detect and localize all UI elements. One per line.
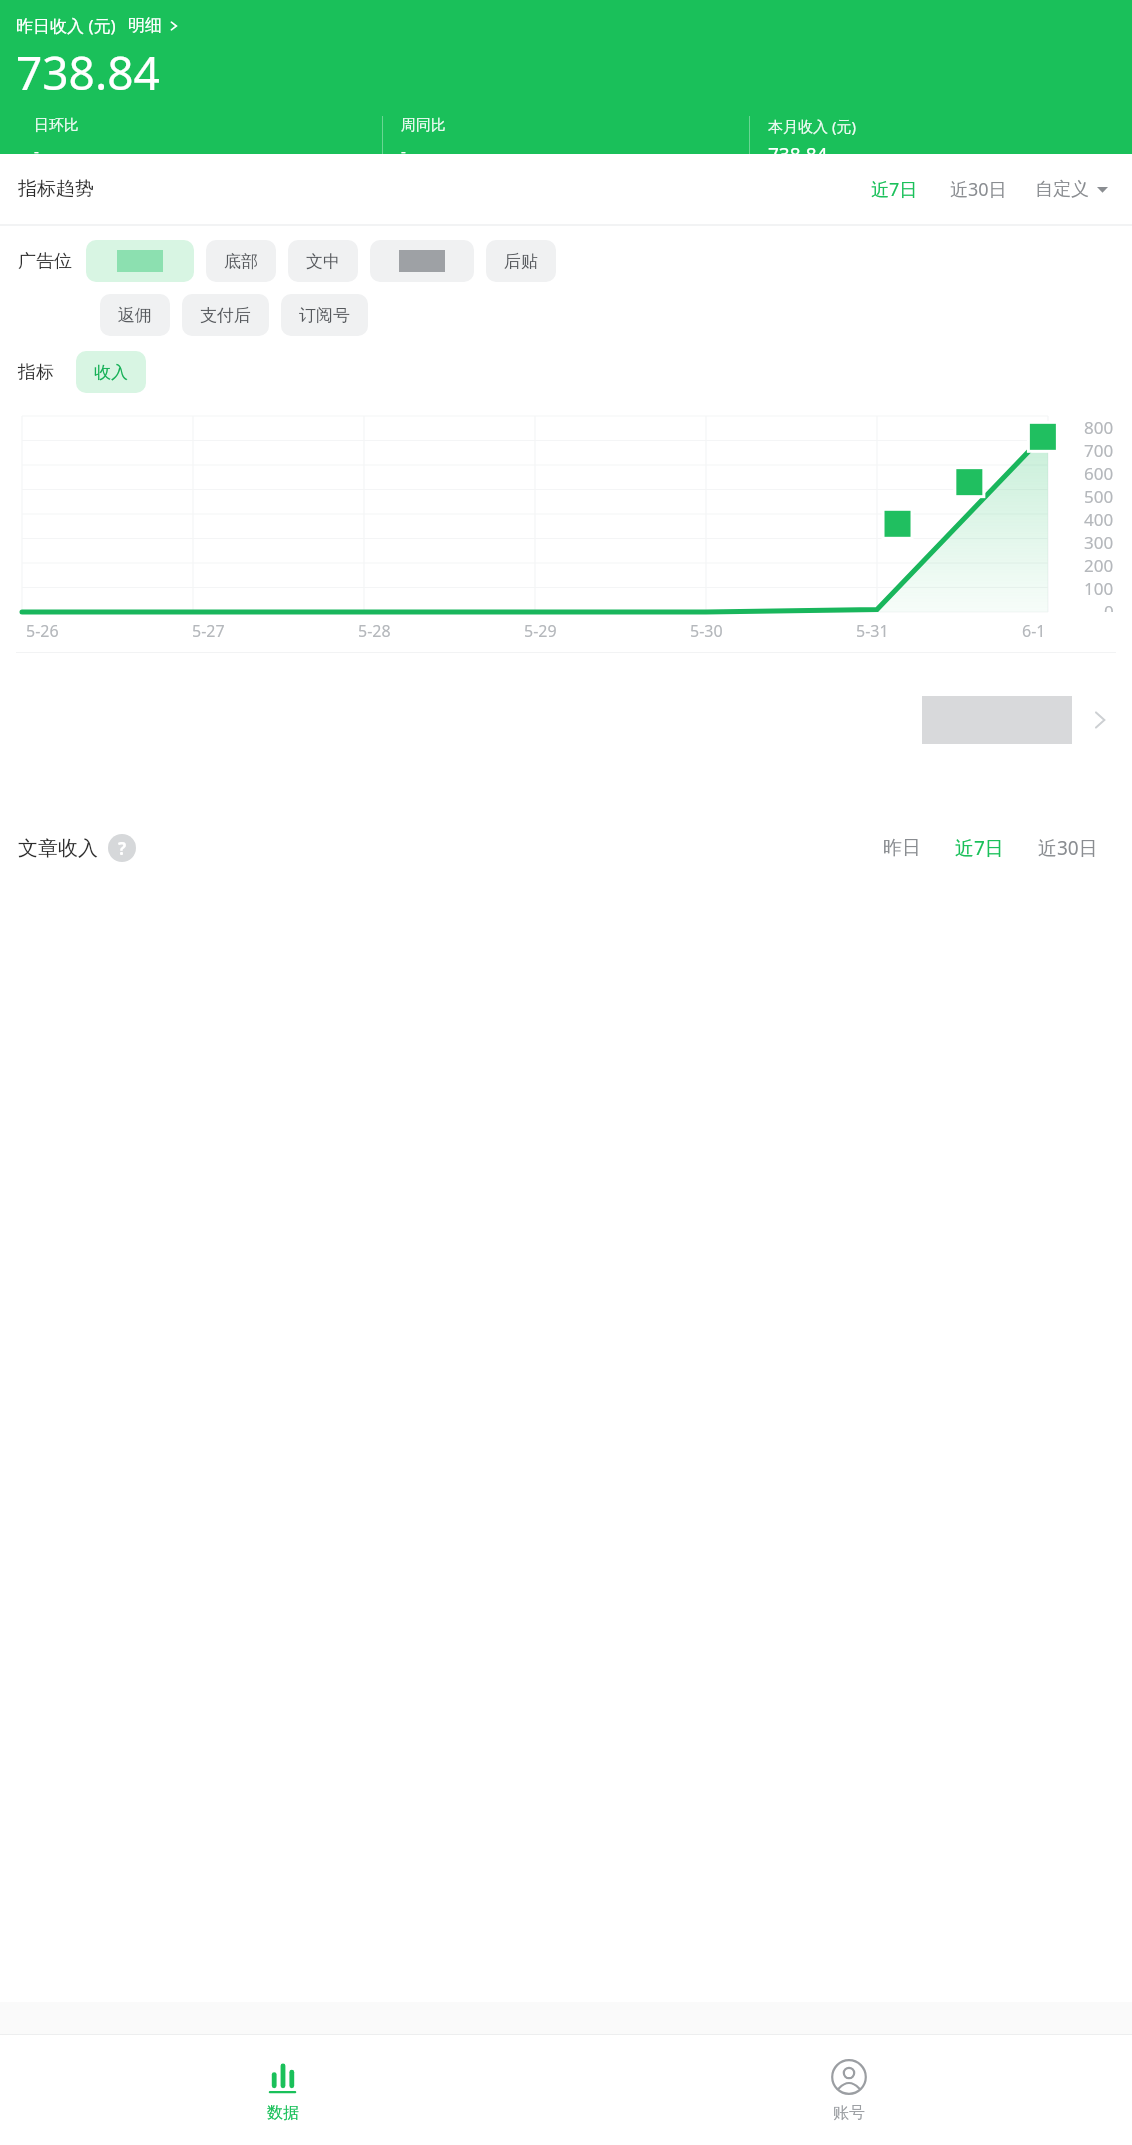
staticText: 近7日 (871, 177, 918, 202)
button[interactable]: 昨日 (875, 830, 929, 866)
button[interactable]: 近30日 (942, 171, 1015, 208)
staticText: 738.84 (16, 41, 160, 104)
staticText: 返佣 (118, 305, 152, 326)
staticText: 周同比 (401, 116, 446, 135)
staticText: 5-29 (524, 620, 557, 642)
button[interactable]: 数据 (0, 2035, 566, 2145)
staticText: 文章收入 (18, 836, 98, 861)
other: Open details (1090, 710, 1110, 730)
staticText: 近30日 (1038, 835, 1098, 861)
button[interactable]: 文中 (288, 240, 358, 282)
staticText: 日环比 (34, 116, 79, 135)
staticText: 明细 (128, 15, 162, 36)
button[interactable]: Open details (0, 653, 1132, 803)
staticText: 200 (1084, 554, 1114, 577)
button[interactable]: Help (108, 834, 136, 862)
staticText: - (34, 141, 39, 154)
staticText: - (401, 141, 406, 154)
staticText: 100 (1084, 577, 1114, 600)
staticText: 账号 (833, 2103, 865, 2123)
staticText: 指标 (18, 361, 54, 384)
staticText: 600 (1084, 462, 1114, 485)
button[interactable] (86, 240, 194, 282)
staticText: 738.84 (768, 142, 828, 154)
staticText: 指标趋势 (18, 177, 94, 201)
staticText: 昨日收入 (元) (16, 14, 116, 37)
staticText: 近7日 (955, 835, 1004, 861)
button[interactable]: 收入 (76, 351, 146, 393)
staticText: 300 (1084, 531, 1114, 554)
staticText: 本月收入 (元) (768, 116, 856, 136)
staticText: 5-30 (690, 620, 723, 642)
staticText: 昨日 (883, 836, 921, 860)
button[interactable]: 账号 (566, 2035, 1132, 2145)
staticText: 400 (1084, 508, 1114, 531)
button[interactable]: 近7日 (947, 829, 1012, 867)
staticText: 700 (1084, 439, 1114, 462)
button[interactable]: 底部 (206, 240, 276, 282)
staticText: 近30日 (950, 177, 1007, 202)
staticText: 5-27 (192, 620, 225, 642)
staticText: 订阅号 (299, 305, 350, 326)
button[interactable]: 支付后 (182, 294, 269, 336)
staticText: ? (118, 837, 127, 860)
staticText: 底部 (224, 251, 258, 272)
button[interactable]: 明细 (128, 15, 180, 36)
staticText: 后贴 (504, 251, 538, 272)
staticText: 5-31 (856, 620, 889, 642)
staticText: 800 (1084, 416, 1114, 439)
staticText: 5-26 (26, 620, 59, 642)
staticText: 500 (1084, 485, 1114, 508)
button[interactable]: 近7日 (863, 171, 926, 208)
button[interactable]: 后贴 (486, 240, 556, 282)
button[interactable]: 自定义 (1031, 172, 1112, 207)
staticText: 数据 (267, 2103, 299, 2123)
staticText: 自定义 (1035, 178, 1089, 201)
staticText: 6-1 (1022, 620, 1046, 642)
staticText: 文中 (306, 251, 340, 272)
staticText: 广告位 (18, 250, 72, 273)
staticText: 收入 (94, 362, 128, 383)
staticText: 0 (1104, 600, 1114, 612)
button[interactable]: 订阅号 (281, 294, 368, 336)
button[interactable]: 返佣 (100, 294, 170, 336)
staticText: 支付后 (200, 305, 251, 326)
button[interactable] (370, 240, 474, 282)
staticText: 5-28 (358, 620, 391, 642)
button[interactable]: 近30日 (1030, 829, 1106, 867)
